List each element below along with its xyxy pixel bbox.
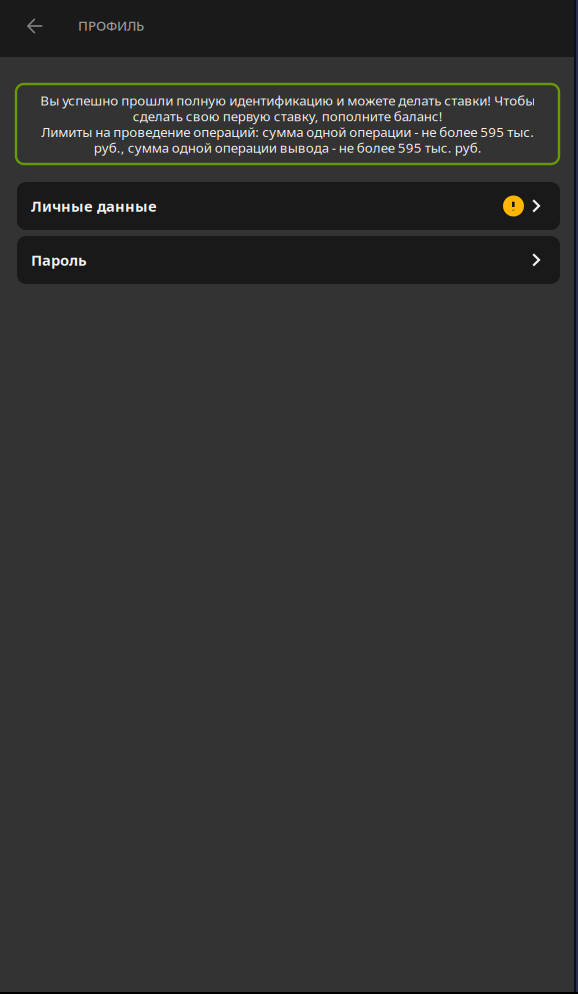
button[interactable]: Пароль (17, 236, 560, 284)
staticText: Личные данные (31, 196, 157, 216)
button[interactable]: Back (0, 0, 62, 57)
button[interactable]: Личные данные (17, 182, 560, 230)
staticText: Вы успешно прошли полную идентификацию и… (40, 92, 535, 156)
staticText: Пароль (31, 250, 87, 270)
staticText: ПРОФИЛЬ (78, 17, 144, 34)
